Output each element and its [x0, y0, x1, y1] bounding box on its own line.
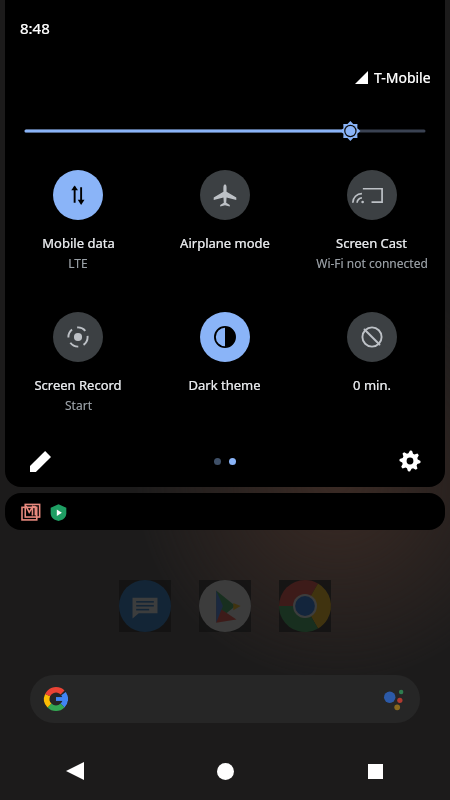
- button[interactable]: App: [199, 580, 251, 632]
- button[interactable]: Brightness: [26, 120, 424, 142]
- button[interactable]: App: [119, 580, 171, 632]
- button[interactable]: Recents: [300, 748, 450, 794]
- button[interactable]: 0 min.: [298, 312, 445, 394]
- staticText: Dark theme: [188, 376, 261, 394]
- button[interactable]: Notifications: [5, 493, 445, 530]
- button[interactable]: Back: [0, 748, 150, 794]
- staticText: 8:48: [20, 18, 50, 38]
- staticText: Airplane mode: [180, 234, 270, 252]
- button[interactable]: Screen Cast: [298, 170, 445, 271]
- staticText: Mobile data: [42, 234, 115, 252]
- staticText: T-Mobile: [374, 68, 431, 87]
- staticText: 0 min.: [353, 376, 391, 394]
- staticText: Wi-Fi not connected: [316, 255, 428, 271]
- staticText: Start: [65, 397, 92, 413]
- button[interactable]: Dark theme: [151, 312, 298, 394]
- button[interactable]: Home: [150, 748, 300, 794]
- button[interactable]: App: [279, 580, 331, 632]
- button[interactable]: Edit tiles: [23, 444, 57, 478]
- staticText: Screen Cast: [336, 234, 407, 252]
- button[interactable]: Google search: [30, 675, 420, 723]
- button[interactable]: Settings: [393, 444, 427, 478]
- staticText: LTE: [68, 255, 88, 271]
- button[interactable]: Screen Record: [5, 312, 151, 413]
- button[interactable]: Airplane mode: [151, 170, 298, 252]
- button[interactable]: Mobile data: [5, 170, 151, 271]
- staticText: Screen Record: [34, 376, 122, 394]
